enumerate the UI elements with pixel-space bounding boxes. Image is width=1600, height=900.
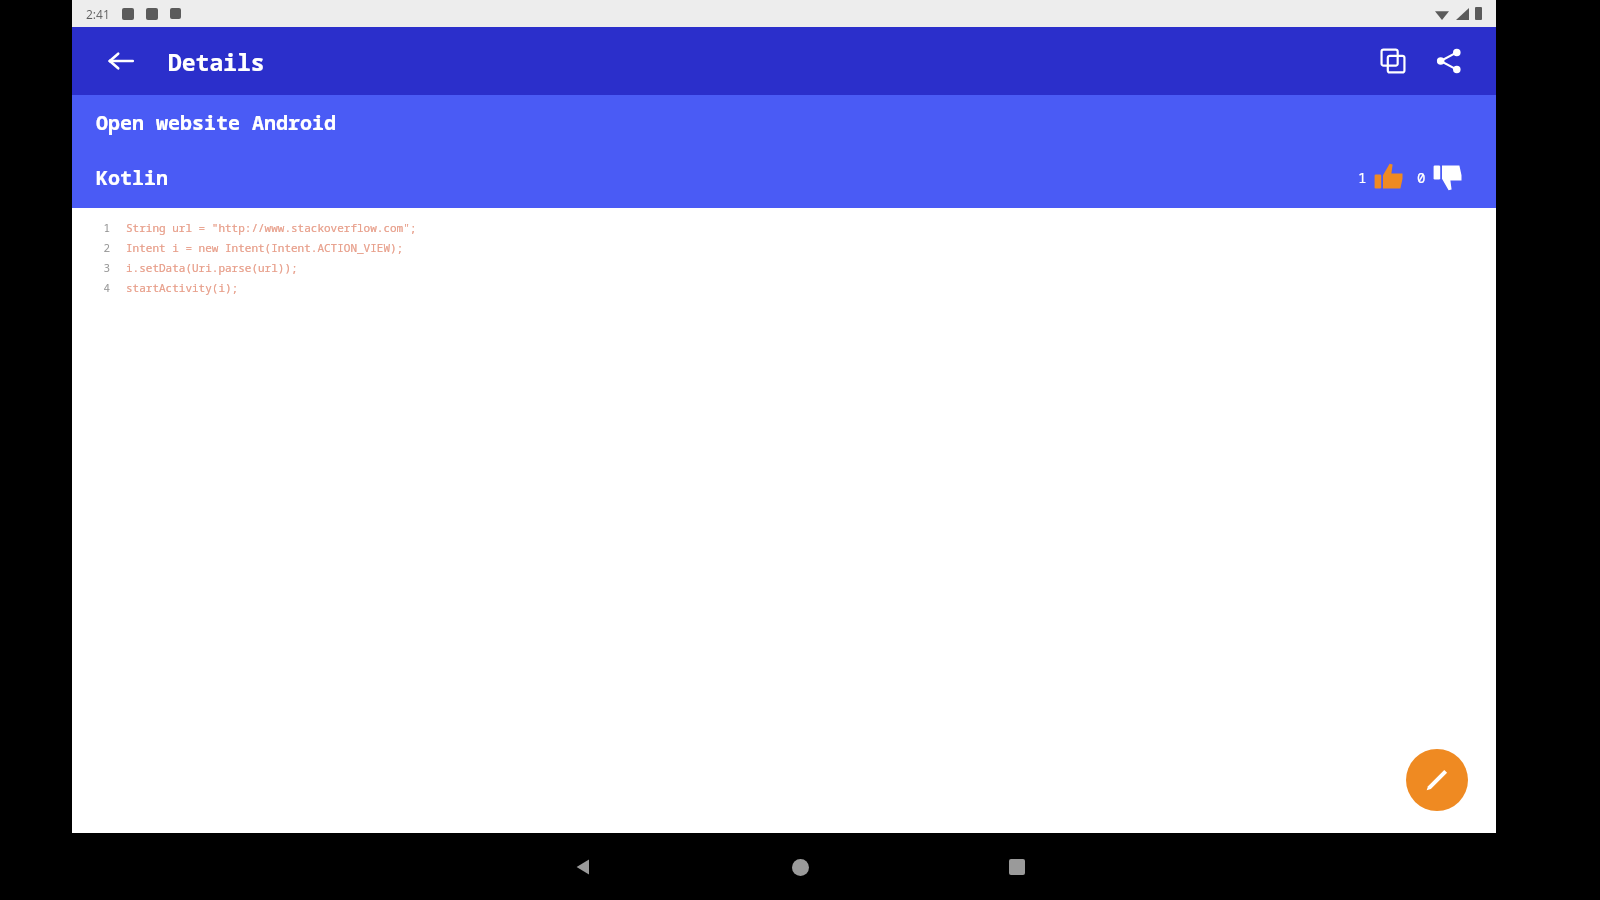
button[interactable]: Upvote [1367, 155, 1411, 199]
staticText: 1 [72, 220, 110, 235]
staticText: startActivity(i); [126, 280, 239, 295]
button[interactable]: Open website Android [72, 95, 1496, 208]
button[interactable]: Recents [994, 844, 1040, 890]
staticText: 3 [72, 260, 110, 275]
button[interactable]: Edit [1406, 749, 1468, 811]
button[interactable]: Home [777, 844, 823, 890]
staticText: 4 [72, 280, 110, 295]
staticText: Intent i = new Intent(Intent.ACTION_VIEW… [126, 240, 404, 255]
button[interactable]: Downvote [1426, 155, 1470, 199]
staticText: 1 [1358, 168, 1367, 187]
button[interactable]: Navigate up [98, 38, 144, 84]
staticText: Details [168, 46, 265, 77]
staticText: 2 [72, 240, 110, 255]
staticText: 2:41 [86, 6, 110, 22]
staticText: Kotlin [96, 164, 168, 191]
button[interactable]: Back [560, 844, 606, 890]
staticText: String url = "http://www.stackoverflow.c… [126, 220, 417, 235]
button[interactable]: Share [1424, 36, 1474, 86]
staticText: Open website Android [96, 109, 336, 136]
button[interactable]: Copy [1368, 36, 1418, 86]
staticText: i.setData(Uri.parse(url)); [126, 260, 298, 275]
staticText: 0 [1417, 168, 1426, 187]
